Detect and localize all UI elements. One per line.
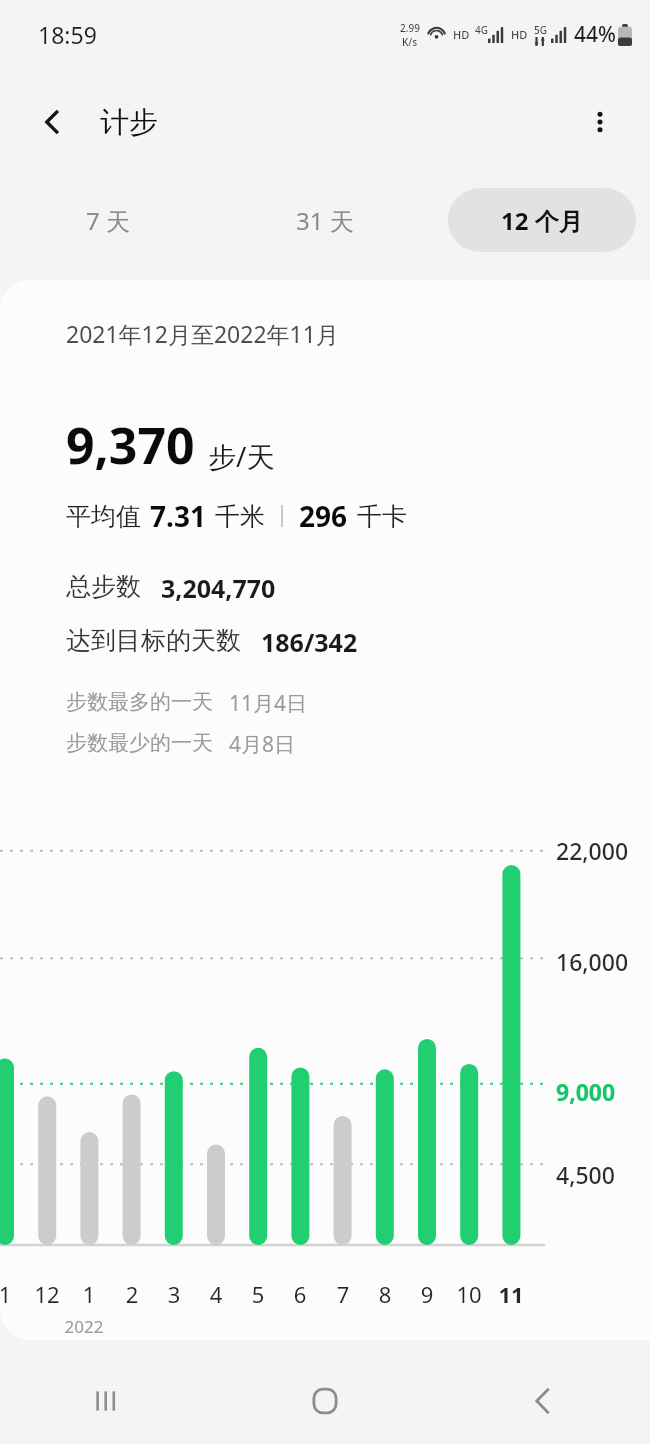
staticText: 12 <box>25 1279 69 1309</box>
staticText: 44% <box>574 20 616 49</box>
button[interactable]: Home <box>216 1358 433 1444</box>
staticText: 9,000 <box>556 1076 616 1107</box>
staticText: 9 <box>405 1279 449 1309</box>
staticText: 1 <box>67 1279 111 1309</box>
staticText: 11月4日 <box>229 689 308 718</box>
staticText: 总步数 <box>66 571 141 602</box>
staticText: 9,370 <box>66 411 195 479</box>
staticText: 18:59 <box>38 19 97 50</box>
button[interactable]: 31 天 <box>231 188 419 252</box>
staticText: 3 <box>152 1279 196 1309</box>
staticText: 2.99 <box>400 21 420 35</box>
staticText: 2022 <box>54 1315 114 1338</box>
staticText: K/s <box>402 35 418 49</box>
staticText: 千卡 <box>357 501 407 532</box>
staticText: 3,204,770 <box>161 571 276 605</box>
staticText: 千米 <box>215 501 265 532</box>
staticText: 平均值 <box>66 501 141 532</box>
staticText: 2021年12月至2022年11月 <box>66 318 339 349</box>
button[interactable]: 7 天 <box>14 188 202 252</box>
staticText: 6 <box>278 1279 322 1309</box>
staticText: 5 <box>236 1279 280 1309</box>
staticText: 11 <box>489 1279 533 1309</box>
staticText: 步数最少的一天 <box>66 730 213 756</box>
staticText: 步数最多的一天 <box>66 689 213 715</box>
staticText: 10 <box>447 1279 491 1309</box>
staticText: 5G <box>534 23 547 37</box>
staticText: 4,500 <box>556 1159 615 1190</box>
staticText: 4 <box>194 1279 238 1309</box>
button[interactable]: Recent apps <box>0 1358 216 1444</box>
staticText: 1 <box>0 1279 27 1309</box>
staticText: 7 <box>321 1279 365 1309</box>
staticText: 4月8日 <box>229 730 296 759</box>
button[interactable]: More options <box>572 94 628 150</box>
staticText: 4G <box>475 23 488 37</box>
button[interactable]: Back <box>24 94 80 150</box>
staticText: 计步 <box>100 104 158 141</box>
staticText: 8 <box>363 1279 407 1309</box>
staticText: 2 <box>110 1279 154 1309</box>
staticText: 31 天 <box>296 204 354 237</box>
staticText: 12 个月 <box>501 204 583 237</box>
staticText: 186/342 <box>261 625 358 659</box>
button[interactable]: 12 个月 <box>448 188 636 252</box>
staticText: 296 <box>299 497 348 535</box>
staticText: HD <box>511 27 528 42</box>
staticText: 达到目标的天数 <box>66 625 241 656</box>
staticText: 7 天 <box>86 204 130 237</box>
staticText: 22,000 <box>556 835 629 866</box>
staticText: 7.31 <box>150 497 206 535</box>
staticText: 步/天 <box>208 437 275 475</box>
button[interactable]: Back <box>433 1358 650 1444</box>
staticText: HD <box>453 27 470 42</box>
staticText: 16,000 <box>556 946 629 977</box>
